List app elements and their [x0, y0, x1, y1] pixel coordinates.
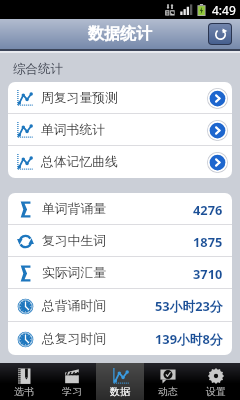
staticText: 4:49 [212, 2, 236, 18]
button[interactable]: 单词书统计 [8, 114, 232, 146]
staticText: 动态 [158, 385, 178, 398]
button[interactable]: 动态 [144, 363, 192, 400]
button[interactable]: 总体记忆曲线 [8, 146, 232, 178]
staticText: 复习中生词 [42, 233, 106, 249]
staticText: 周复习量预测 [41, 90, 118, 106]
staticText: 实际词汇量 [42, 265, 106, 281]
button[interactable]: 实际词汇量 [8, 257, 232, 289]
staticText: 53小时23分 [155, 297, 223, 314]
button[interactable]: 设置 [192, 363, 240, 400]
staticText: 139小时8分 [155, 330, 223, 347]
staticText: 单词书统计 [41, 122, 105, 138]
staticText: 数据统计 [88, 24, 152, 44]
staticText: 数据 [110, 385, 130, 398]
staticText: 综合统计 [13, 61, 63, 77]
staticText: 总背诵时间 [42, 298, 106, 314]
staticText: 单词背诵量 [42, 201, 106, 217]
staticText: 3710 [193, 265, 223, 282]
staticText: 1875 [193, 233, 223, 250]
staticText: 设置 [206, 385, 226, 398]
button[interactable]: Refresh [209, 24, 231, 44]
staticText: 选书 [14, 385, 34, 398]
button[interactable]: 周复习量预测 [8, 82, 232, 114]
button[interactable]: 学习 [48, 363, 96, 400]
button[interactable]: 单词背诵量 [8, 193, 232, 225]
staticText: 4276 [193, 201, 223, 218]
button[interactable]: 总背诵时间 [8, 289, 232, 322]
button[interactable]: 总复习时间 [8, 322, 232, 355]
button[interactable]: 数据 [96, 363, 144, 400]
staticText: 总复习时间 [42, 331, 106, 347]
staticText: 学习 [62, 385, 82, 398]
button[interactable]: 复习中生词 [8, 225, 232, 257]
button[interactable]: 选书 [0, 363, 48, 400]
staticText: 总体记忆曲线 [41, 154, 118, 170]
